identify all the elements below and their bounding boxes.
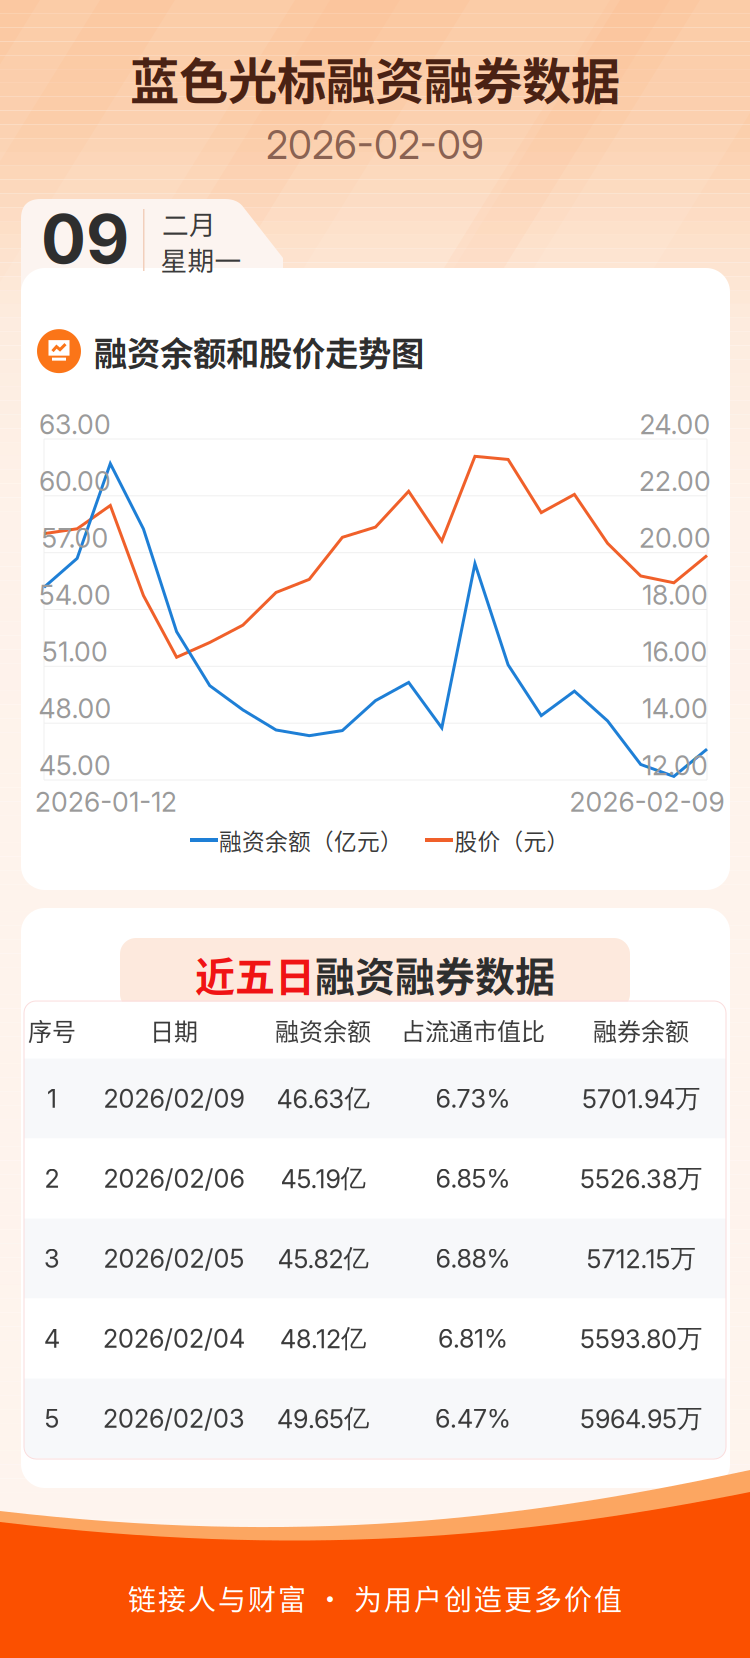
- staticText: 2026/02/05: [103, 1243, 244, 1274]
- staticText: 5964.95万: [580, 1402, 702, 1434]
- staticText: 63.00: [39, 408, 111, 441]
- staticText: 6.73%: [435, 1083, 510, 1114]
- staticText: 51.00: [42, 636, 108, 668]
- staticText: 46.63亿: [276, 1082, 369, 1114]
- staticText: 16.00: [642, 636, 707, 668]
- staticText: 序号: [28, 1013, 76, 1047]
- staticText: 股价（元）: [454, 824, 569, 856]
- staticText: 占流通市值比: [401, 1013, 545, 1047]
- staticText: 22.00: [639, 465, 711, 497]
- staticText: 2026-02-09: [266, 121, 484, 168]
- staticText: 60.00: [39, 465, 111, 497]
- staticText: 54.00: [39, 579, 111, 611]
- staticText: 09: [41, 199, 129, 279]
- staticText: 3: [44, 1243, 60, 1274]
- staticText: 2026/02/09: [103, 1083, 244, 1114]
- staticText: 20.00: [639, 522, 711, 554]
- staticText: 6.85%: [435, 1163, 510, 1194]
- staticText: 2026/02/04: [103, 1323, 245, 1354]
- staticText: 1: [47, 1083, 57, 1114]
- staticText: 49.65亿: [277, 1402, 369, 1434]
- staticText: 57.00: [41, 522, 108, 554]
- staticText: 链接人与财富 · 为用户创造更多价值: [128, 1578, 622, 1618]
- staticText: 2: [44, 1163, 59, 1194]
- staticText: 二月: [162, 204, 216, 242]
- staticText: 近五日: [195, 945, 315, 1003]
- staticText: 2026/02/03: [103, 1403, 245, 1434]
- staticText: 6.88%: [435, 1243, 510, 1274]
- staticText: 14.00: [642, 692, 708, 725]
- staticText: 48.00: [38, 692, 111, 725]
- staticText: 5593.80万: [580, 1322, 702, 1354]
- staticText: 融券余额: [593, 1013, 689, 1047]
- staticText: 2026-02-09: [569, 786, 724, 818]
- staticText: 星期一: [160, 240, 241, 278]
- staticText: 4: [44, 1323, 60, 1354]
- staticText: 45.82亿: [277, 1242, 368, 1274]
- staticText: 5712.15万: [586, 1242, 695, 1274]
- staticText: 融资余额和股价走势图: [94, 327, 424, 375]
- staticText: 6.81%: [438, 1323, 508, 1354]
- staticText: 24.00: [639, 408, 710, 441]
- staticText: 48.12亿: [280, 1322, 366, 1354]
- staticText: 5701.94万: [582, 1082, 700, 1114]
- staticText: 日期: [150, 1013, 198, 1047]
- staticText: 融资余额（亿元）: [219, 824, 403, 856]
- staticText: 2026/02/06: [103, 1163, 244, 1194]
- staticText: 融资余额: [275, 1013, 371, 1047]
- staticText: 45.00: [39, 749, 111, 782]
- staticText: 蓝色光标融资融券数据: [130, 42, 620, 113]
- staticText: 5: [44, 1403, 59, 1434]
- staticText: 融资融券数据: [315, 945, 555, 1003]
- staticText: 6.47%: [435, 1403, 511, 1434]
- staticText: 18.00: [642, 579, 708, 611]
- staticText: 5526.38万: [580, 1162, 702, 1194]
- staticText: 45.19亿: [280, 1162, 365, 1194]
- staticText: 12.00: [642, 749, 708, 782]
- staticText: 2026-01-12: [35, 786, 177, 818]
